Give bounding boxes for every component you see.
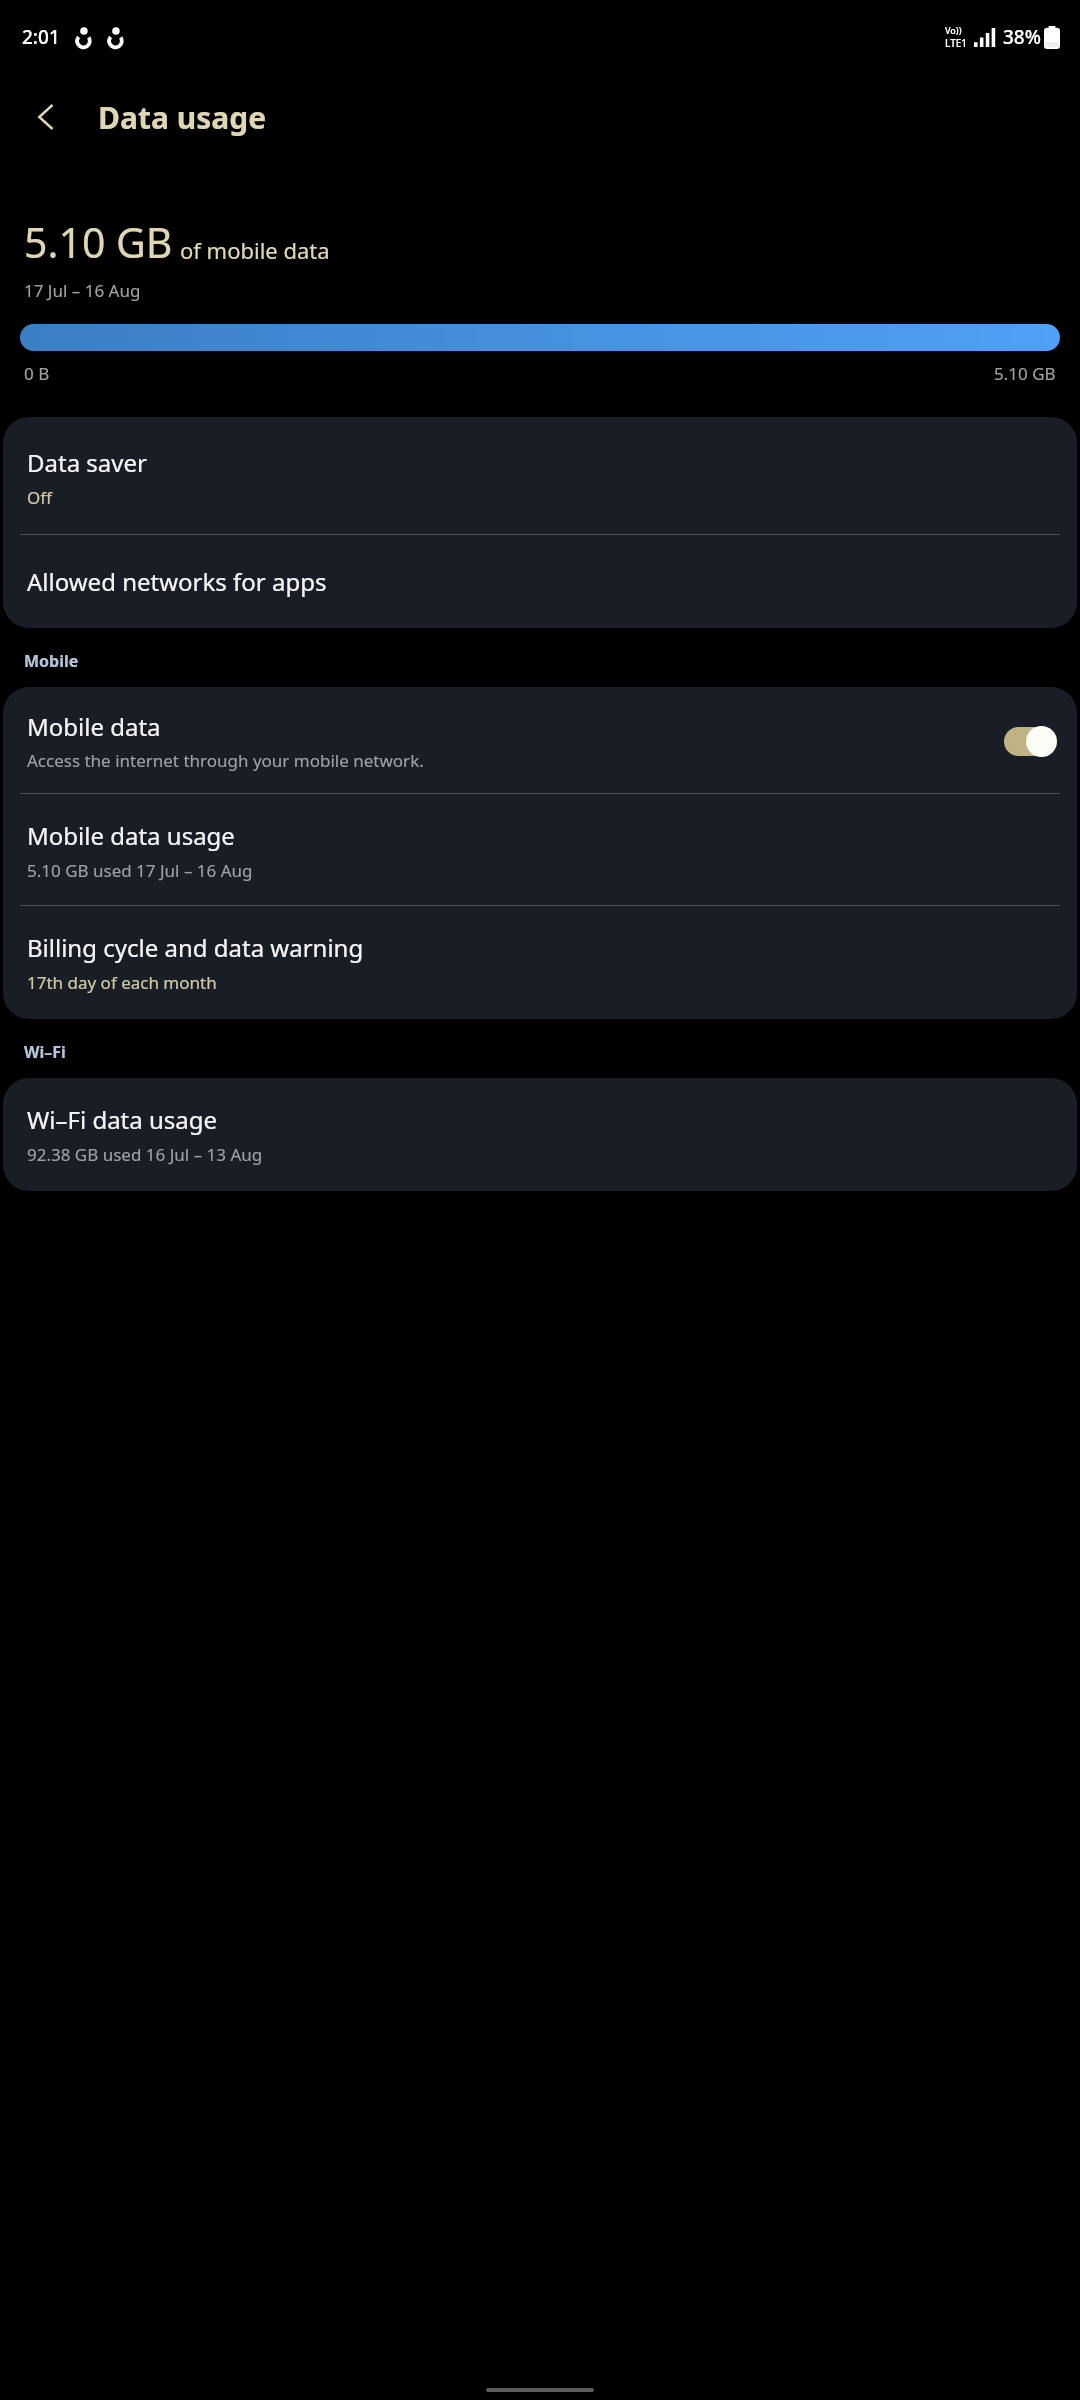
button[interactable]: Back [14,85,78,149]
button[interactable]: Mobile data, on [1004,726,1057,757]
staticText: 17 Jul – 16 Aug [24,279,141,302]
staticText: 17th day of each month [27,971,217,994]
staticText: Data saver [27,446,147,479]
staticText: 92.38 GB used 16 Jul – 13 Aug [27,1143,263,1166]
button[interactable]: Billing cycle and data warning [3,906,1077,1019]
staticText: 0 B [24,362,50,385]
staticText: 5.10 GB [24,214,173,270]
staticText: Wi–Fi [24,1041,66,1063]
staticText: Wi–Fi data usage [27,1103,218,1136]
staticText: LTE1 [945,36,968,50]
staticText: Off [27,486,52,509]
staticText: of mobile data [180,235,330,265]
button[interactable]: Mobile data [3,687,1077,793]
button[interactable]: Allowed networks for apps [3,535,1077,628]
staticText: 5.10 GB used 17 Jul – 16 Aug [27,859,253,882]
staticText: 5.10 GB [994,362,1056,385]
staticText: Vo)) [945,24,962,36]
staticText: 2:01 [22,24,60,50]
staticText: Billing cycle and data warning [27,931,364,964]
staticText: Allowed networks for apps [27,565,327,598]
staticText: Mobile [24,650,79,672]
staticText: Data usage [98,97,267,138]
staticText: Mobile data [27,710,161,743]
staticText: 38% [1003,24,1041,50]
button[interactable]: Data saver [3,417,1077,534]
button[interactable]: Wi–Fi data usage [3,1078,1077,1191]
button[interactable]: Mobile data usage [3,794,1077,905]
staticText: Access the internet through your mobile … [27,749,928,772]
staticText: Mobile data usage [27,819,235,852]
